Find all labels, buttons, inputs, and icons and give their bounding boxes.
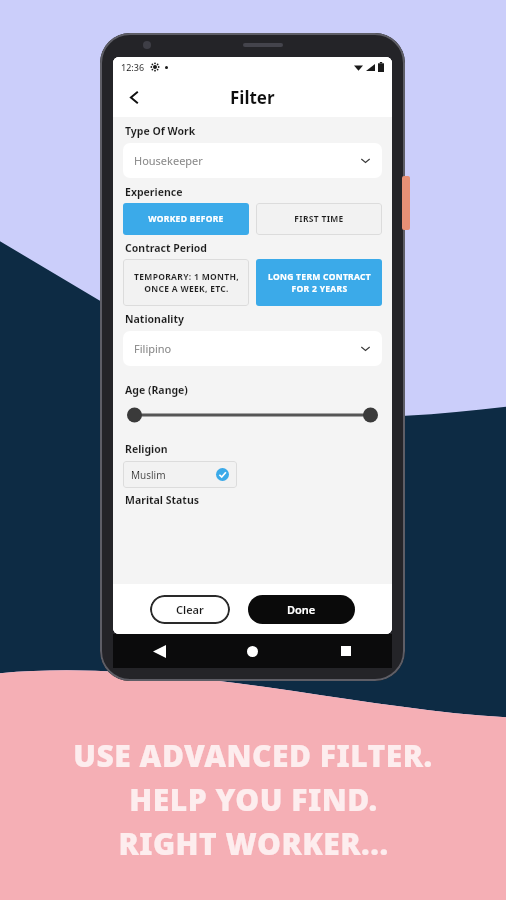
staticText: Nationality	[125, 312, 185, 326]
staticText: Contract Period	[125, 241, 207, 255]
button[interactable]: Home	[206, 634, 299, 668]
staticText: Filipino	[134, 341, 172, 356]
staticText: Type Of Work	[125, 124, 196, 138]
staticText: Muslim	[131, 468, 166, 482]
button[interactable]: Filipino	[123, 331, 382, 366]
button[interactable]: Back	[113, 634, 206, 668]
button[interactable]: Clear	[150, 595, 230, 624]
staticText: Marital Status	[125, 493, 200, 507]
button[interactable]: Muslim	[123, 461, 237, 488]
staticText: 12:36	[121, 61, 145, 73]
button[interactable]: Recents	[299, 634, 392, 668]
staticText: Clear	[176, 602, 204, 617]
staticText: Age (Range)	[125, 383, 188, 397]
staticText: RIGHT WORKER...	[118, 823, 389, 864]
staticText: Housekeeper	[134, 153, 203, 168]
button[interactable]: FIRST TIME	[256, 203, 382, 235]
staticText: HELP YOU FIND.	[129, 779, 378, 820]
staticText: Religion	[125, 442, 168, 456]
staticText: Filter	[230, 86, 275, 109]
staticText: FIRST TIME	[294, 213, 344, 225]
button[interactable]: LONG TERM CONTRACT FOR 2 YEARS	[256, 259, 382, 306]
staticText: LONG TERM CONTRACT FOR 2 YEARS	[268, 271, 371, 295]
button[interactable]: WORKED BEFORE	[123, 203, 249, 235]
button[interactable]: TEMPORARY: 1 MONTH, ONCE A WEEK, ETC.	[123, 259, 249, 306]
staticText: Experience	[125, 185, 183, 199]
staticText: WORKED BEFORE	[148, 213, 224, 225]
staticText: TEMPORARY: 1 MONTH, ONCE A WEEK, ETC.	[134, 271, 239, 295]
staticText: USE ADVANCED FILTER.	[73, 735, 433, 776]
button[interactable]: Back	[117, 80, 151, 114]
button[interactable]: Housekeeper	[123, 143, 382, 178]
staticText: Done	[287, 602, 316, 617]
button[interactable]: Done	[248, 595, 355, 624]
